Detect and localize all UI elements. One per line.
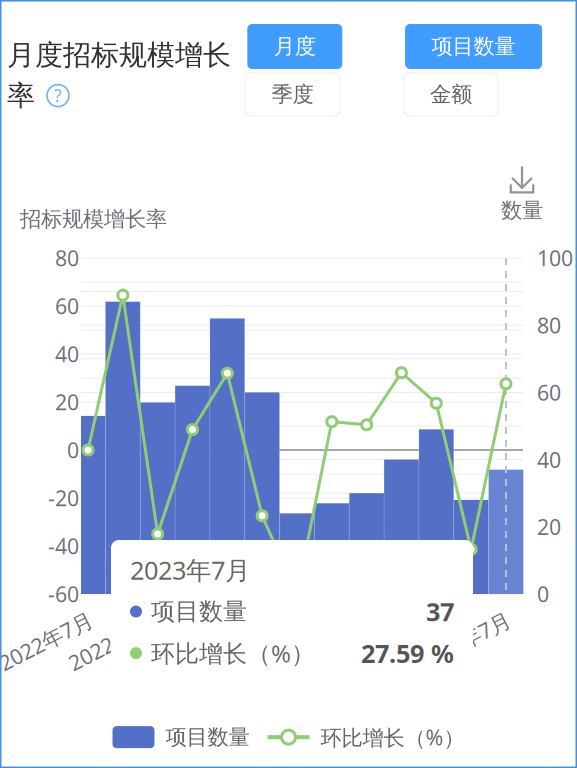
staticText: ?: [54, 84, 62, 107]
staticText: 20: [55, 388, 79, 416]
staticText: 37: [426, 595, 454, 628]
staticText: 2022年7月: [0, 604, 91, 632]
staticText: 80: [537, 311, 561, 339]
staticText: -40: [48, 532, 79, 560]
staticText: 金额: [430, 81, 472, 107]
staticText: 2023年7月: [407, 604, 509, 632]
button[interactable]: 季度: [245, 72, 341, 116]
staticText: 率: [7, 78, 35, 113]
staticText: 80: [55, 244, 79, 272]
button[interactable]: 环比增长（%）: [267, 723, 464, 751]
button[interactable]: 项目数量: [405, 24, 542, 69]
staticText: -20: [48, 484, 79, 512]
staticText: 金额: [430, 81, 472, 107]
staticText: 项目数量: [151, 597, 247, 626]
staticText: 100: [537, 244, 573, 272]
staticText: 2022年11月: [116, 604, 230, 632]
button[interactable]: 项目数量: [112, 724, 249, 750]
staticText: 60: [537, 378, 561, 406]
staticText: 项目数量: [165, 724, 249, 750]
staticText: 0: [67, 436, 79, 464]
button[interactable]: 月度: [247, 24, 342, 69]
staticText: 2023年1月: [198, 604, 300, 632]
staticText: 环比增长（%）: [320, 723, 464, 751]
staticText: 月度: [274, 33, 316, 60]
button[interactable]: 金额: [403, 72, 498, 116]
staticText: 招标规模增长率: [20, 206, 167, 232]
staticText: 环比增长（%）: [151, 637, 315, 669]
staticText: 月度招标规模增长: [7, 38, 231, 72]
staticText: 27.59 %: [361, 636, 454, 670]
staticText: 季度: [272, 81, 314, 107]
button[interactable]: 下载数量: [492, 166, 552, 224]
button[interactable]: 帮助: [45, 83, 71, 109]
staticText: -60: [48, 580, 79, 608]
staticText: 60: [55, 292, 79, 320]
staticText: 项目数量: [432, 33, 516, 60]
staticText: 0: [537, 580, 549, 608]
staticText: 40: [55, 340, 79, 368]
staticText: 2023年7月: [130, 553, 250, 587]
staticText: 2023年5月: [337, 604, 439, 632]
staticText: 20: [537, 513, 561, 541]
staticText: 数量: [501, 197, 543, 224]
staticText: 2022年9月: [59, 604, 161, 632]
staticText: 季度: [272, 81, 314, 107]
staticText: 40: [537, 445, 561, 474]
